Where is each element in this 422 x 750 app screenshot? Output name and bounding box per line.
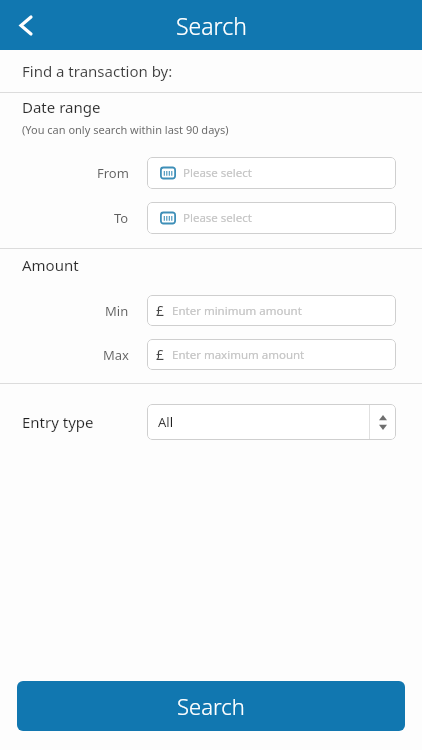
staticText: Please select <box>183 165 252 181</box>
staticText: Enter minimum amount <box>172 303 302 319</box>
staticText: Find a transaction by: <box>22 61 173 81</box>
button[interactable]: All <box>147 404 396 440</box>
staticText: Min <box>105 302 129 320</box>
staticText: Search <box>176 10 247 41</box>
button[interactable]: £ <box>147 339 396 370</box>
staticText: Search <box>177 691 245 721</box>
staticText: Entry type <box>22 412 94 432</box>
button[interactable]: Please select <box>147 157 396 189</box>
button[interactable] <box>14 13 38 37</box>
staticText: Enter maximum amount <box>172 347 305 363</box>
staticText: £ <box>156 301 165 320</box>
button[interactable]: £ <box>147 295 396 326</box>
staticText: To <box>114 209 129 227</box>
staticText: All <box>158 413 174 431</box>
staticText: (You can only search within last 90 days… <box>22 122 229 137</box>
staticText: Amount <box>22 255 79 275</box>
staticText: Max <box>103 346 129 364</box>
staticText: From <box>97 164 129 182</box>
staticText: Date range <box>22 97 101 117</box>
staticText: £ <box>156 345 165 364</box>
staticText: Please select <box>183 210 252 226</box>
button[interactable]: Please select <box>147 202 396 234</box>
button[interactable]: Search <box>17 681 405 731</box>
